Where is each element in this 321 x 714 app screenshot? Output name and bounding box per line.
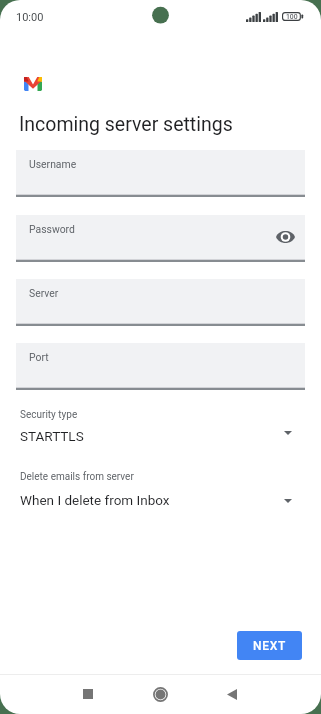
staticText: Server [29,287,59,299]
staticText: Incoming server settings [19,113,233,136]
staticText: STARTTLS [20,428,84,444]
button[interactable]: Home [138,677,182,711]
button[interactable]: Server [16,279,305,326]
button[interactable]: NEXT [237,631,302,660]
button[interactable]: Security type [0,409,321,451]
button[interactable]: Port [16,343,305,390]
staticText: Username [29,158,77,170]
staticText: Port [29,351,49,363]
staticText: Password [29,223,75,235]
button[interactable]: Delete emails from server [0,471,321,513]
staticText: Delete emails from server [20,471,134,483]
button[interactable]: Back [210,677,254,711]
button[interactable]: Password [16,215,305,262]
staticText: 100 [286,13,298,21]
button[interactable]: Username [16,150,305,197]
button[interactable]: Recent apps [66,677,110,711]
staticText: Security type [20,409,78,421]
staticText: 10:00 [16,11,44,24]
staticText: NEXT [253,639,286,653]
button[interactable]: Show password [273,225,297,249]
staticText: When I delete from Inbox [20,492,170,508]
